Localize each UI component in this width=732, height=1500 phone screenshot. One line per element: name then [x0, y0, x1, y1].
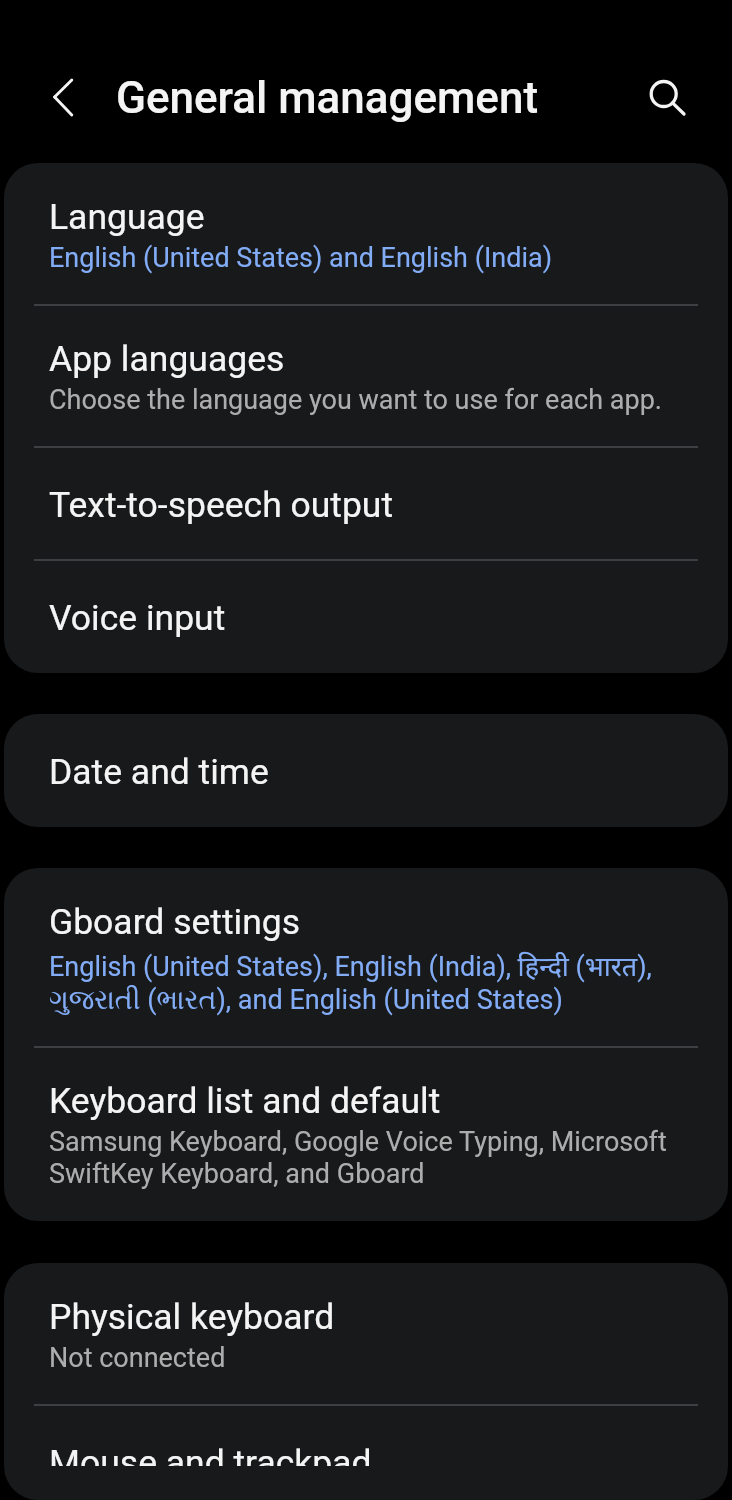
staticText: Mouse and trackpad — [49, 1442, 372, 1466]
staticText: English (United States), English (India)… — [49, 947, 687, 1016]
staticText: Gboard settings — [49, 901, 301, 943]
button[interactable]: Voice input — [4, 560, 728, 673]
button[interactable]: Text-to-speech output — [4, 447, 728, 560]
staticText: Date and time — [49, 751, 269, 793]
button[interactable]: App languages — [4, 305, 728, 447]
staticText: Samsung Keyboard, Google Voice Typing, M… — [49, 1126, 687, 1190]
staticText: English (United States) and English (Ind… — [49, 242, 553, 274]
staticText: Keyboard list and default — [49, 1080, 441, 1122]
staticText: Text-to-speech output — [49, 484, 394, 526]
staticText: Physical keyboard — [49, 1296, 335, 1338]
button[interactable]: Gboard settings — [4, 868, 728, 1047]
staticText: Choose the language you want to use for … — [49, 384, 662, 416]
staticText: General management — [116, 72, 539, 124]
button[interactable]: Keyboard list and default — [4, 1047, 728, 1221]
button[interactable]: Search — [626, 56, 702, 132]
button[interactable]: Navigate up — [25, 59, 101, 135]
button[interactable]: Mouse and trackpad — [4, 1405, 728, 1500]
staticText: Language — [49, 196, 205, 238]
staticText: Not connected — [49, 1342, 226, 1374]
button[interactable]: Language — [4, 163, 728, 305]
button[interactable]: Physical keyboard — [4, 1263, 728, 1405]
button[interactable]: Date and time — [4, 714, 728, 827]
staticText: App languages — [49, 338, 285, 380]
staticText: Voice input — [49, 597, 226, 639]
